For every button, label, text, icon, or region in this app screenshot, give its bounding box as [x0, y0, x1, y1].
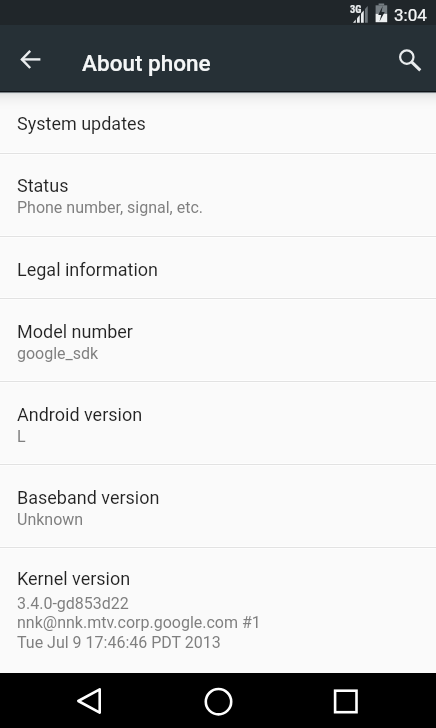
- staticText: google_sdk: [17, 344, 99, 363]
- staticText: nnk@nnk.mtv.corp.google.com #1: [17, 613, 261, 632]
- button[interactable]: Model number: [0, 299, 436, 381]
- button[interactable]: Search: [378, 25, 436, 91]
- staticText: Phone number, signal, etc.: [17, 198, 204, 217]
- staticText: Baseband version: [17, 487, 160, 508]
- staticText: Model number: [17, 321, 133, 342]
- staticText: 3.4.0-gd853d22: [17, 594, 129, 613]
- button[interactable]: Kernel version: [0, 548, 436, 673]
- staticText: Status: [17, 175, 69, 196]
- staticText: About phone: [82, 50, 211, 76]
- button[interactable]: System updates: [0, 91, 436, 153]
- button[interactable]: Status: [0, 154, 436, 236]
- button[interactable]: Legal information: [0, 237, 436, 298]
- staticText: Kernel version: [17, 568, 131, 589]
- staticText: L: [17, 427, 26, 446]
- button[interactable]: Recent apps: [314, 673, 378, 728]
- staticText: 3:04: [394, 5, 427, 25]
- staticText: Android version: [17, 404, 143, 425]
- button[interactable]: Back: [57, 673, 121, 728]
- staticText: System updates: [17, 113, 146, 134]
- button[interactable]: Home: [186, 673, 250, 728]
- button[interactable]: Android version: [0, 382, 436, 464]
- button[interactable]: Baseband version: [0, 465, 436, 547]
- staticText: Legal information: [17, 259, 158, 280]
- staticText: Unknown: [17, 510, 84, 529]
- staticText: 3G: [350, 3, 362, 15]
- button[interactable]: Navigate up: [0, 25, 60, 91]
- staticText: Tue Jul 9 17:46:46 PDT 2013: [17, 633, 221, 652]
